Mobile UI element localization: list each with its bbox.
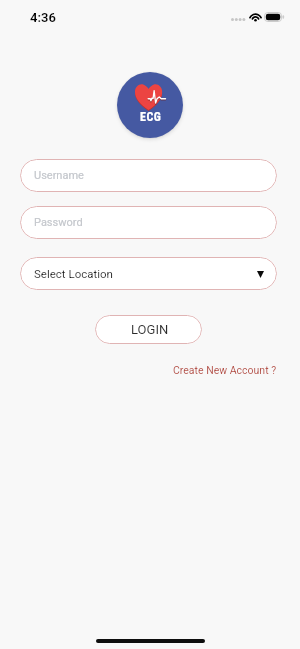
staticText: LOGIN (131, 322, 169, 337)
other: ECG app logo (117, 72, 183, 138)
button[interactable]: LOGIN (95, 315, 202, 344)
staticText: Username (34, 169, 84, 182)
button[interactable]: Select Location (20, 257, 277, 290)
staticText: Password (34, 216, 83, 229)
button[interactable]: Username (20, 159, 277, 192)
staticText: Select Location (34, 267, 113, 280)
button[interactable]: Create New Account ? (167, 361, 283, 379)
other: Battery full (264, 12, 285, 22)
other: Cellular signal (231, 18, 245, 21)
staticText: Create New Account ? (173, 364, 277, 376)
staticText: ECG (140, 110, 162, 124)
button[interactable]: Password (20, 206, 277, 239)
other: Wi-Fi (249, 12, 262, 21)
staticText: 4:36 (30, 10, 56, 25)
